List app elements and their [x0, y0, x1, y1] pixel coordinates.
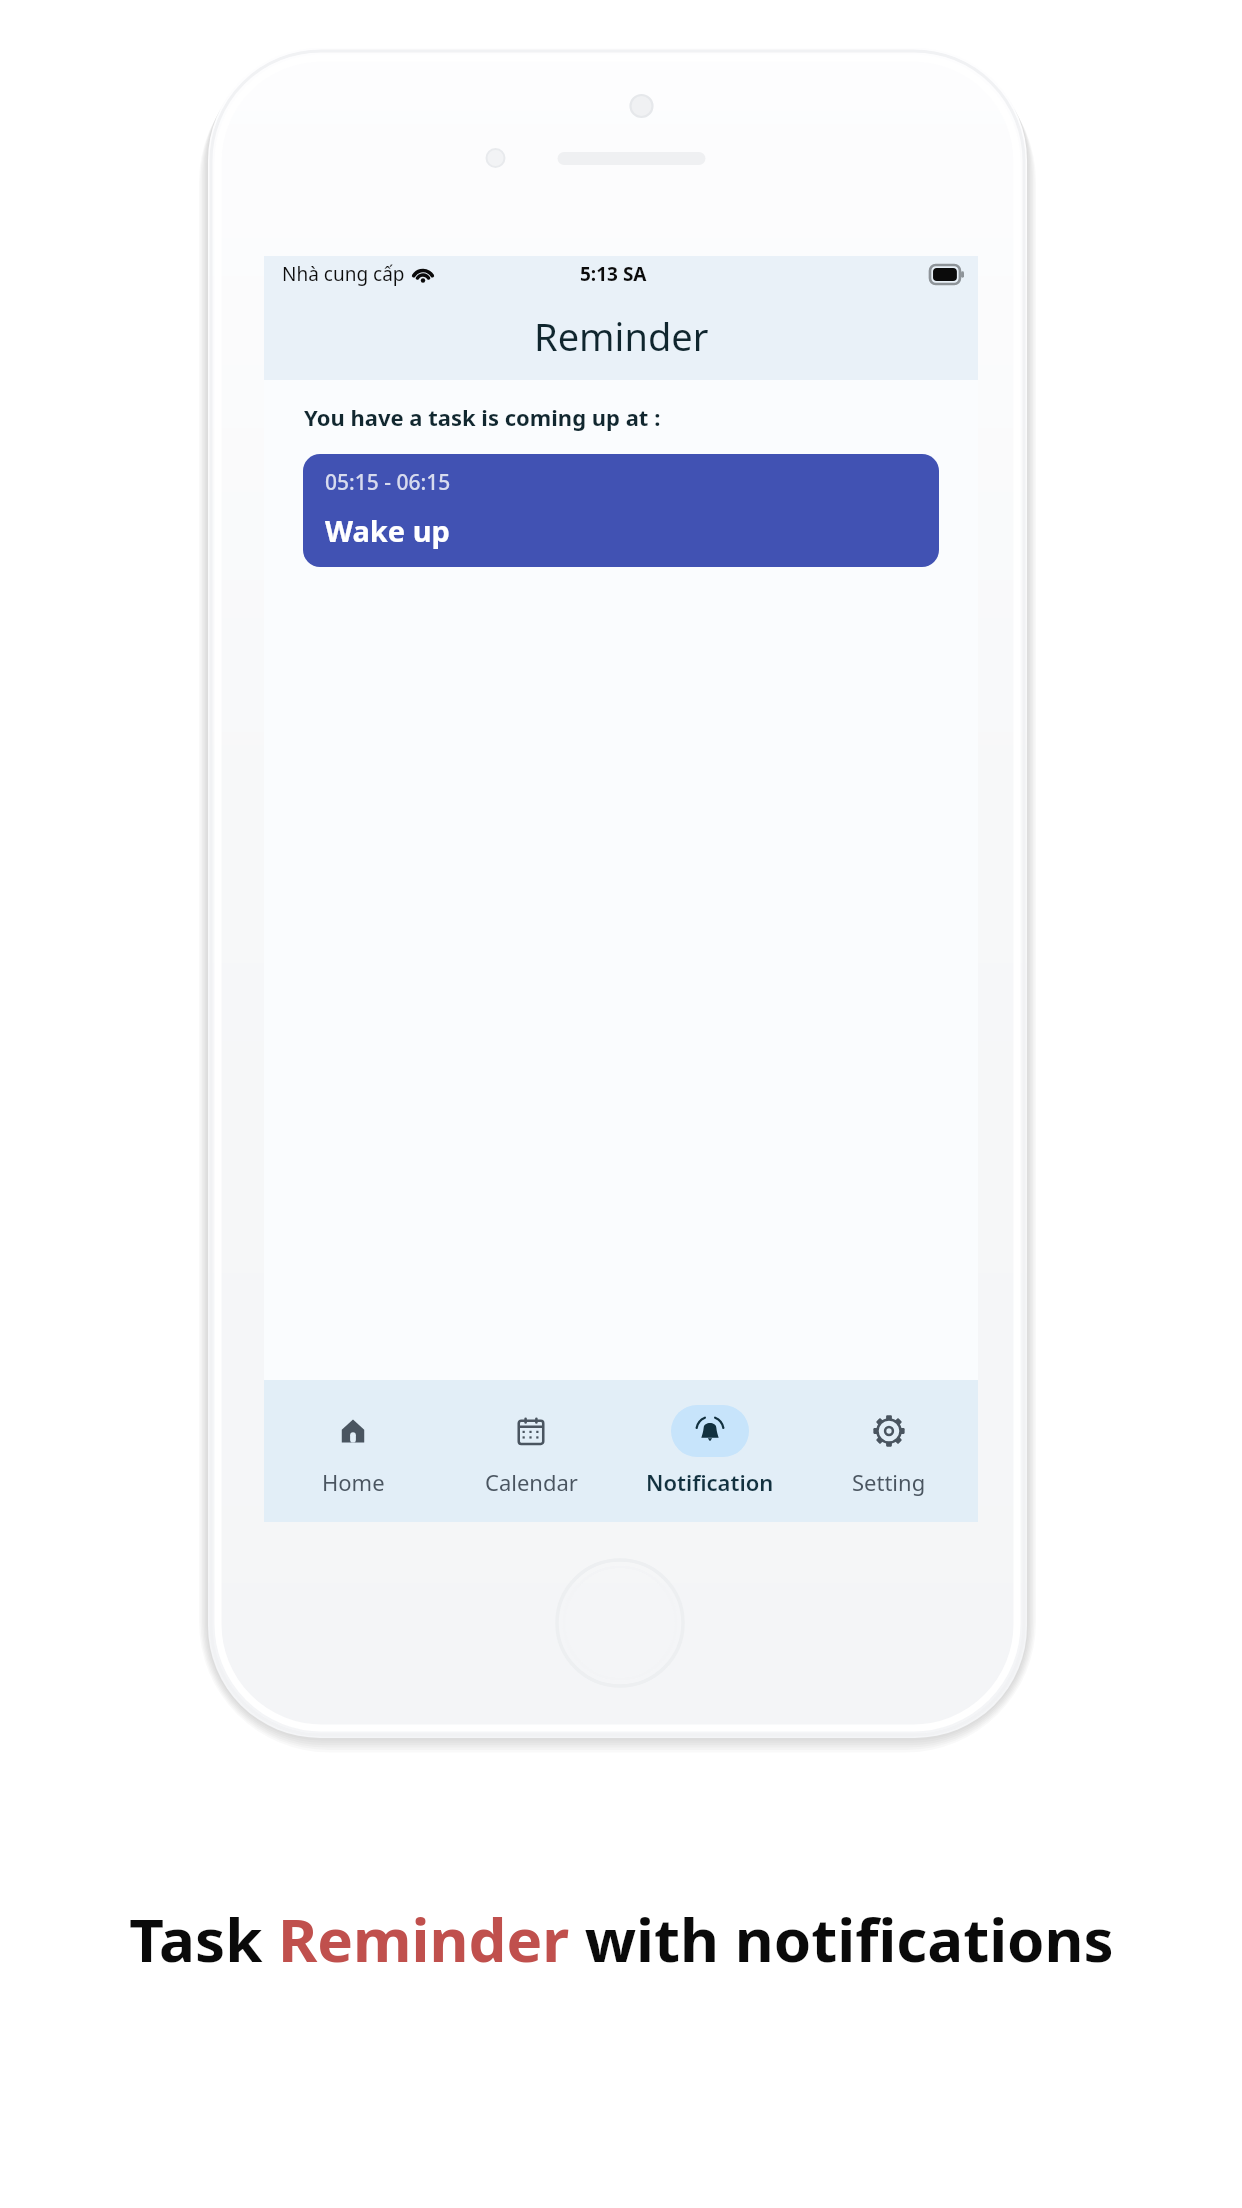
button[interactable]: 05:15 - 06:15	[303, 454, 939, 567]
staticText: Task Reminder with notifications	[129, 1898, 1114, 1980]
button[interactable]: Home	[264, 1380, 442, 1522]
staticText: 5:13 SA	[580, 261, 647, 287]
staticText: Home	[322, 1467, 385, 1497]
button[interactable]: Setting	[799, 1380, 978, 1522]
staticText: Setting	[852, 1467, 926, 1497]
staticText: Notification	[646, 1467, 774, 1497]
staticText: Reminder	[534, 310, 709, 362]
staticText: Calendar	[485, 1467, 578, 1497]
staticText: Wake up	[325, 511, 450, 550]
staticText: Nhà cung cấp	[282, 261, 405, 287]
button[interactable]: Notification	[620, 1380, 799, 1522]
staticText: You have a task is coming up at :	[304, 402, 661, 432]
staticText: 05:15 - 06:15	[325, 468, 451, 497]
button[interactable]: Calendar	[442, 1380, 620, 1522]
